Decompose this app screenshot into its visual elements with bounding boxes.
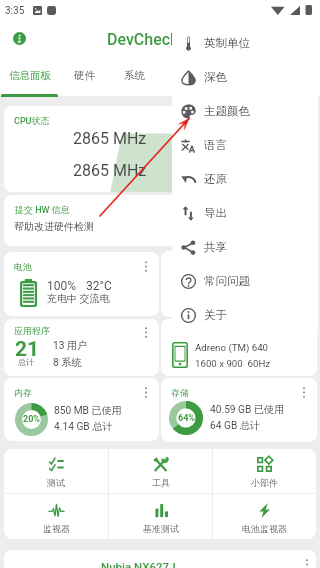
button[interactable]: CPU状态 <box>4 106 316 192</box>
staticText: 总计 <box>18 357 34 367</box>
staticText: 4.14 GB 总计 <box>54 420 113 433</box>
button[interactable]: 基准测试 <box>109 494 212 539</box>
staticText: 1600 x 900 60Hz <box>195 358 271 369</box>
staticText: 64% <box>178 413 195 424</box>
staticText: CPU状态 <box>14 115 50 126</box>
staticText: 导出 <box>204 206 227 220</box>
button[interactable]: 存储 <box>161 378 317 442</box>
button[interactable]: 深色 <box>172 60 318 94</box>
staticText: 信息面板 <box>9 69 51 82</box>
button[interactable]: 应用程序 <box>4 319 159 376</box>
button[interactable]: 提交 HW 信息 <box>4 195 316 246</box>
button[interactable]: 电池监视器 <box>213 494 316 539</box>
button[interactable]: 还原 <box>172 162 318 196</box>
button[interactable]: 共享 <box>172 230 318 264</box>
staticText: 存储 <box>171 387 189 398</box>
staticText: 还原 <box>204 172 227 186</box>
staticText: 常问问题 <box>204 274 250 288</box>
button[interactable]: 小部件 <box>213 449 316 493</box>
button[interactable]: 硬件 <box>59 58 109 96</box>
staticText: 内存 <box>14 387 32 398</box>
button[interactable] <box>161 251 317 317</box>
staticText: Nubia NX627J <box>101 560 176 568</box>
button[interactable]: 导出 <box>172 196 318 230</box>
staticText: 英制单位 <box>204 36 250 50</box>
staticText: 深色 <box>204 70 227 84</box>
button[interactable]: 常问问题 <box>172 264 318 298</box>
button[interactable]: 英制单位 <box>172 26 318 60</box>
staticText: 工具 <box>152 477 170 488</box>
staticText: 8 系统 <box>53 356 82 369</box>
staticText: 主题颜色 <box>204 104 250 118</box>
staticText: 共享 <box>204 240 227 254</box>
button[interactable]: 测试 <box>4 449 108 493</box>
button[interactable]: Info <box>7 26 31 50</box>
staticText: 测试 <box>47 477 65 488</box>
staticText: 32°C <box>86 279 112 293</box>
staticText: 40.59 GB 已使用 <box>210 403 285 416</box>
staticText: 3:35 <box>5 5 25 17</box>
staticText: 关于 <box>204 308 227 322</box>
staticText: 基准测试 <box>143 523 179 534</box>
staticText: 语言 <box>204 138 227 152</box>
staticText: 帮助改进硬件检测 <box>14 220 94 233</box>
staticText: 监视器 <box>43 523 70 534</box>
staticText: 2865 MHz <box>73 129 147 148</box>
staticText: Adreno (TM) 640 <box>195 342 269 353</box>
button[interactable]: 工具 <box>109 449 212 493</box>
staticText: 2865 MHz <box>73 161 147 180</box>
button[interactable]: 语言 <box>172 128 318 162</box>
staticText: 电池监视器 <box>242 523 287 534</box>
button[interactable]: 监视器 <box>4 494 108 539</box>
button[interactable]: Adreno (TM) 640 <box>161 319 317 376</box>
button[interactable]: 电池 <box>4 252 159 316</box>
staticText: 提交 HW 信息 <box>15 204 70 215</box>
button[interactable]: 系统 <box>109 58 159 96</box>
button[interactable]: 内存 <box>4 378 159 441</box>
staticText: 100% <box>47 279 77 293</box>
button[interactable]: Nubia NX627J <box>4 550 316 568</box>
staticText: 20% <box>23 414 40 425</box>
staticText: 850 MB 已使用 <box>54 404 123 417</box>
button[interactable]: 关于 <box>172 298 318 332</box>
staticText: 小部件 <box>251 477 278 488</box>
button[interactable]: 主题颜色 <box>172 94 318 128</box>
staticText: 电池 <box>14 261 32 272</box>
staticText: 64 GB 总计 <box>210 419 261 432</box>
staticText: 13 用户 <box>53 339 88 352</box>
staticText: 充电中 交流电 <box>47 292 110 305</box>
staticText: 硬件 <box>74 69 95 82</box>
staticText: 系统 <box>124 69 145 82</box>
button[interactable]: 信息面板 <box>1 58 59 96</box>
staticText: 应用程序 <box>14 325 50 336</box>
staticText: DevCheck <box>107 30 179 49</box>
staticText: 21 <box>15 337 40 362</box>
